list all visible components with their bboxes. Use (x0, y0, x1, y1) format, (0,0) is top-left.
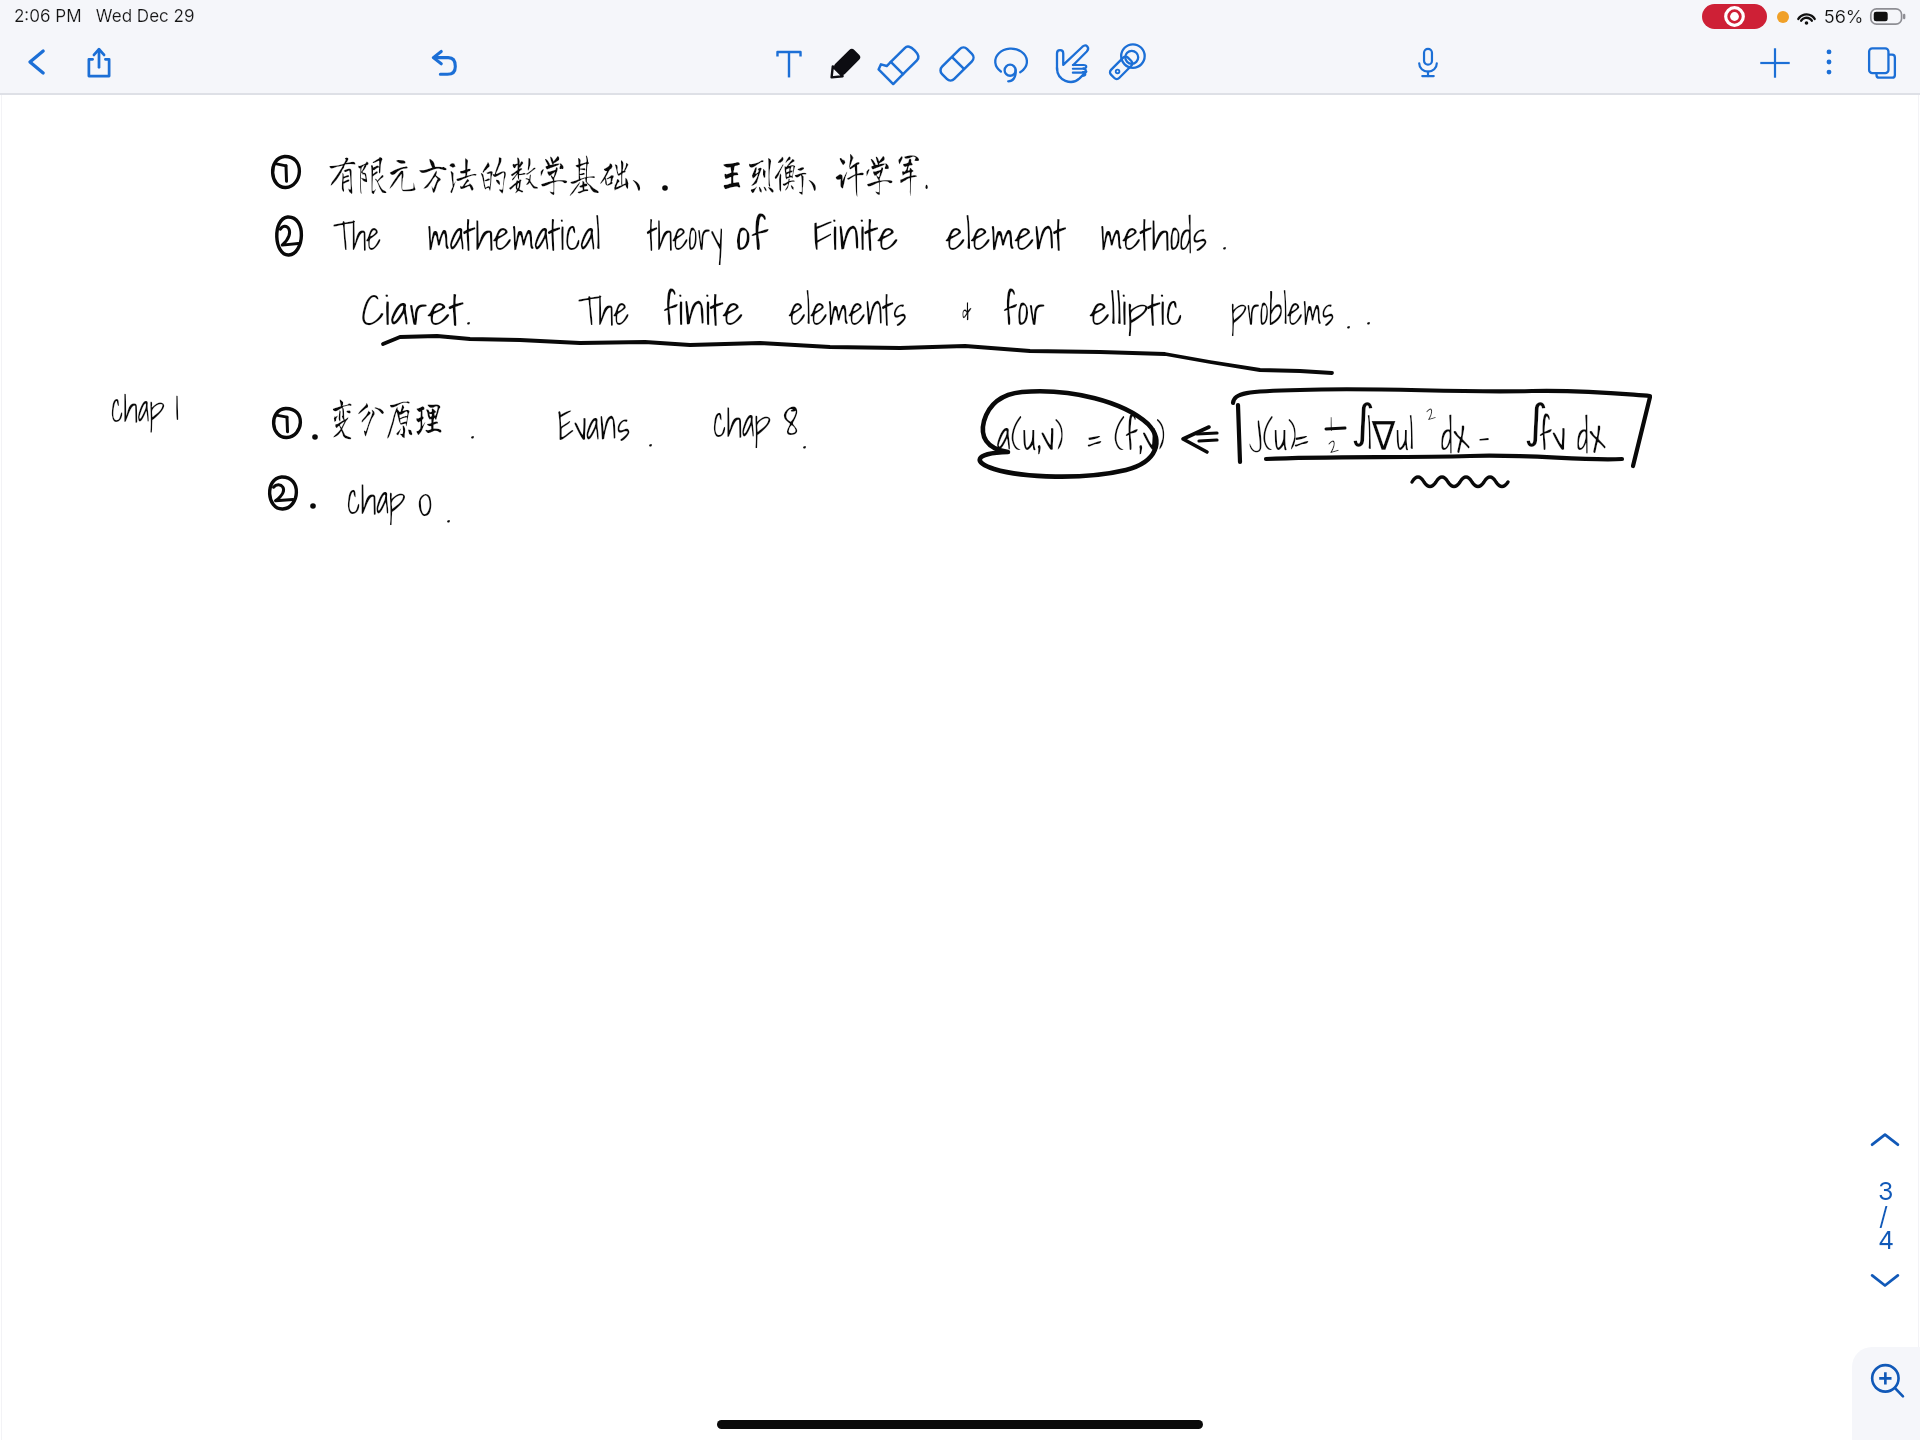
staticText: Evans (557, 393, 630, 457)
button[interactable]: Previous page (1862, 1118, 1908, 1164)
staticText: fv (1539, 403, 1567, 467)
button[interactable]: Zoom in (1852, 1347, 1920, 1440)
staticText: 2:06 PM Wed Dec 29 (14, 6, 195, 27)
staticText: The (578, 278, 629, 342)
staticText: |∇u| (1367, 403, 1414, 467)
button[interactable]: Laser pointer (1101, 40, 1149, 88)
staticText: / (1879, 1201, 1889, 1231)
button[interactable]: Hand tool (1045, 40, 1093, 88)
staticText: . (1366, 278, 1372, 342)
button[interactable]: Next page (1862, 1257, 1908, 1303)
staticText: 1 (175, 375, 180, 436)
staticText: 4 (1878, 1225, 1895, 1255)
staticText: . (648, 400, 654, 464)
staticText: chap (347, 467, 406, 531)
staticText: J(u) (1249, 403, 1297, 467)
staticText: (f,v) (1114, 403, 1165, 467)
staticText: ∫ (1524, 394, 1548, 448)
staticText: chap (713, 390, 772, 454)
staticText: 3 (1878, 1176, 1894, 1206)
staticText: elliptic (1090, 278, 1183, 342)
button[interactable]: Share (77, 40, 121, 84)
staticText: theory (648, 203, 723, 267)
staticText: 1 (1330, 405, 1333, 440)
staticText: 0 (417, 469, 434, 533)
staticText: 2 (1426, 397, 1437, 429)
staticText: 56% (1824, 6, 1864, 28)
staticText: mathematical (427, 203, 601, 267)
staticText: element (946, 203, 1067, 267)
button[interactable]: Pen tool (821, 40, 869, 88)
staticText: dx (1577, 403, 1606, 467)
staticText: 8 (783, 388, 800, 452)
button[interactable]: Lasso tool (989, 40, 1037, 88)
staticText: = (1087, 403, 1102, 467)
staticText: . (1222, 203, 1228, 267)
button[interactable]: Back (15, 40, 59, 84)
staticText: = (1294, 403, 1309, 467)
staticText: 有限元方法的数学基础、 (327, 148, 660, 196)
staticText: Finite (813, 203, 899, 267)
staticText: chap (111, 377, 165, 438)
button[interactable]: Pages (1859, 40, 1905, 86)
staticText: finite (663, 278, 744, 342)
staticText: of (736, 203, 770, 267)
button[interactable]: Eraser tool (933, 40, 981, 88)
button[interactable]: Microphone (1406, 40, 1450, 84)
staticText: elements (789, 278, 906, 342)
staticText: . (470, 392, 476, 456)
staticText: methods (1100, 203, 1208, 267)
button[interactable]: Highlighter tool (877, 40, 925, 88)
staticText: a(u,v) (997, 403, 1064, 467)
staticText: . (466, 278, 472, 342)
staticText: − (1478, 404, 1490, 468)
staticText: ∫ (1351, 394, 1375, 448)
staticText: Ciaret (361, 278, 464, 342)
staticText: for (1003, 278, 1046, 342)
staticText: problems (1231, 278, 1334, 342)
button[interactable]: Text tool (765, 40, 813, 88)
staticText: . (446, 476, 452, 540)
staticText: 王烈衡、许学军. (717, 148, 927, 196)
staticText: dx (1441, 403, 1470, 467)
staticText: 变分原理 (328, 392, 444, 440)
staticText: The (333, 203, 381, 267)
staticText: . (1346, 282, 1352, 346)
staticText: 2 (1328, 427, 1340, 462)
button[interactable]: More options (1807, 40, 1851, 84)
button[interactable]: Add page (1752, 40, 1798, 86)
button[interactable]: Undo (421, 40, 465, 84)
staticText: . (802, 402, 808, 466)
staticText: & (962, 278, 972, 342)
